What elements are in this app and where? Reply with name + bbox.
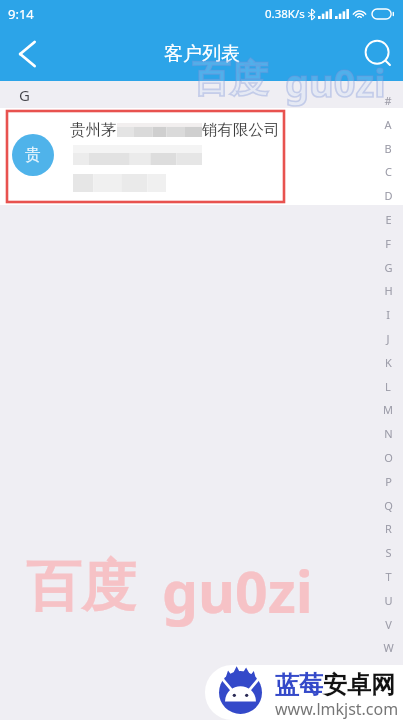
staticText: 9:14 — [8, 5, 34, 23]
staticText: Y — [385, 688, 392, 703]
button[interactable]: W — [379, 639, 397, 656]
button[interactable]: E — [379, 211, 397, 228]
staticText: 百度 — [192, 55, 268, 103]
button[interactable]: T — [379, 568, 397, 585]
button[interactable]: K — [379, 354, 397, 371]
staticText: V — [385, 617, 392, 632]
staticText: Q — [384, 498, 393, 513]
staticText: 0.38K/s — [265, 6, 305, 22]
staticText: H — [384, 283, 393, 298]
staticText: gu0zi — [162, 552, 313, 630]
staticText: G — [19, 85, 30, 105]
button[interactable]: B — [379, 140, 397, 157]
button[interactable]: F — [379, 235, 397, 252]
button[interactable]: Q — [379, 497, 397, 514]
staticText: Z — [385, 712, 392, 720]
staticText: X — [385, 664, 392, 679]
staticText: 百度 — [192, 55, 268, 103]
button[interactable]: C — [379, 163, 397, 180]
staticText: N — [384, 426, 393, 441]
staticText: G — [384, 260, 393, 275]
button[interactable]: Z — [379, 711, 397, 720]
button[interactable]: P — [379, 473, 397, 490]
staticText: A — [384, 117, 392, 132]
button[interactable]: V — [379, 616, 397, 633]
staticText: P — [385, 474, 392, 489]
staticText: S — [385, 545, 392, 560]
staticText: www.lmkjst.com — [275, 698, 399, 720]
button[interactable]: D — [379, 187, 397, 204]
staticText: # — [384, 93, 392, 108]
staticText: gu0zi — [285, 56, 386, 108]
button[interactable]: G — [379, 259, 397, 276]
button[interactable]: Search — [353, 29, 403, 79]
button[interactable]: # — [379, 92, 397, 109]
button[interactable]: U — [379, 592, 397, 609]
button[interactable]: R — [379, 520, 397, 537]
button[interactable]: L — [379, 378, 397, 395]
staticText: 蓝莓 — [275, 670, 323, 700]
staticText: F — [385, 236, 391, 251]
staticText: R — [385, 521, 392, 536]
staticText: 百度 — [26, 552, 136, 621]
staticText: O — [384, 450, 393, 465]
button[interactable]: 贵 — [0, 108, 403, 205]
staticText: M — [383, 402, 393, 417]
button[interactable]: I — [379, 306, 397, 323]
staticText: 客户列表 — [164, 42, 240, 66]
button[interactable]: Back — [4, 30, 52, 78]
staticText: B — [384, 141, 392, 156]
staticText: I — [386, 307, 390, 322]
staticText: U — [384, 593, 393, 608]
button[interactable]: H — [379, 282, 397, 299]
staticText: C — [385, 164, 392, 179]
staticText: J — [386, 331, 390, 346]
button[interactable]: O — [379, 449, 397, 466]
button[interactable]: Y — [379, 687, 397, 704]
button[interactable]: J — [379, 330, 397, 347]
staticText: T — [385, 569, 392, 584]
staticText: E — [385, 212, 392, 227]
staticText: D — [384, 188, 393, 203]
button[interactable]: M — [379, 401, 397, 418]
staticText: W — [383, 640, 394, 655]
button[interactable]: A — [379, 116, 397, 133]
button[interactable]: S — [379, 544, 397, 561]
staticText: K — [385, 355, 392, 370]
button[interactable]: N — [379, 425, 397, 442]
button[interactable]: X — [379, 663, 397, 680]
staticText: 安卓网 — [323, 670, 395, 700]
staticText: 销有限公司 — [202, 120, 280, 140]
staticText: L — [385, 379, 391, 394]
staticText: gu0zi — [285, 56, 386, 108]
staticText: 贵 — [25, 145, 41, 165]
staticText: 贵州茅 — [70, 120, 117, 140]
